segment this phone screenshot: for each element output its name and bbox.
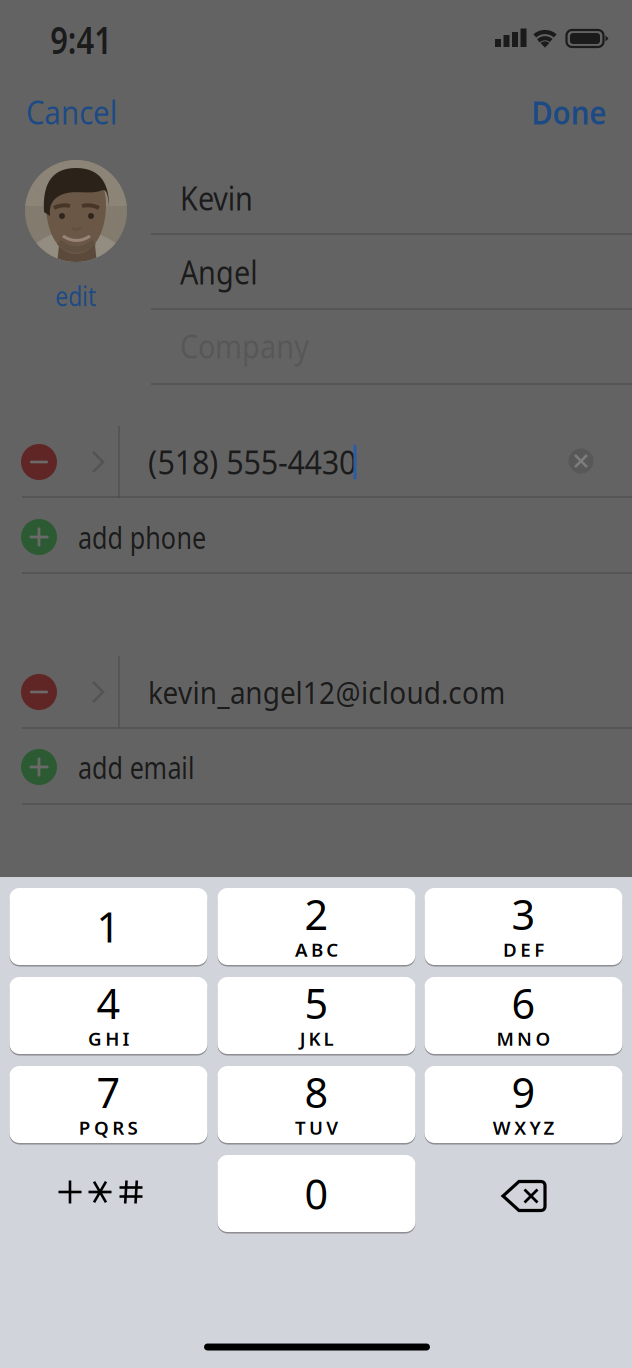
button[interactable]: Cancel bbox=[28, 83, 168, 141]
button[interactable]: 5 bbox=[217, 977, 415, 1054]
staticText: 5 bbox=[304, 976, 328, 1030]
button[interactable]: Clear text bbox=[564, 444, 598, 478]
button[interactable]: 1 bbox=[9, 888, 207, 965]
staticText: add email bbox=[22, 747, 164, 787]
staticText: kevin_angel12@icloud.com bbox=[120, 672, 513, 712]
staticText: 3 bbox=[511, 887, 535, 941]
staticText: edit bbox=[52, 278, 100, 314]
button[interactable]: Remove bbox=[17, 670, 61, 714]
staticText: 8 bbox=[304, 1065, 328, 1119]
staticText: M N O bbox=[498, 1027, 548, 1050]
staticText: 2 bbox=[304, 887, 328, 941]
button[interactable]: Symbols bbox=[9, 1155, 207, 1232]
staticText: Done bbox=[528, 91, 610, 133]
button[interactable]: 8 bbox=[217, 1066, 415, 1143]
button[interactable]: 3 bbox=[424, 888, 622, 965]
button[interactable]: 0 bbox=[217, 1155, 415, 1232]
staticText: W X Y Z bbox=[495, 1116, 552, 1139]
staticText: 1 bbox=[96, 899, 120, 954]
staticText: 9 bbox=[511, 1065, 535, 1119]
button[interactable]: 9 bbox=[424, 1066, 622, 1143]
button[interactable]: 7 bbox=[9, 1066, 207, 1143]
staticText: 6 bbox=[511, 976, 535, 1030]
staticText: add phone bbox=[22, 517, 178, 557]
button[interactable]: Contact photo bbox=[25, 160, 127, 262]
button[interactable]: 6 bbox=[424, 977, 622, 1054]
staticText: 7 bbox=[96, 1065, 120, 1119]
staticText: A B C bbox=[296, 938, 336, 961]
staticText: Kevin bbox=[149, 177, 230, 219]
staticText: Angel bbox=[149, 251, 235, 293]
staticText: 0 bbox=[304, 1166, 328, 1221]
staticText: P Q R S bbox=[81, 1116, 136, 1139]
staticText: (518) 555-4430 bbox=[134, 441, 352, 483]
staticText: 4 bbox=[96, 976, 120, 1030]
staticText: Company bbox=[149, 325, 292, 367]
staticText: G H I bbox=[89, 1027, 127, 1050]
button[interactable]: edit bbox=[31, 274, 121, 318]
button[interactable]: Remove bbox=[17, 440, 61, 484]
staticText: Cancel bbox=[22, 91, 121, 133]
button[interactable]: Done bbox=[474, 83, 604, 141]
button[interactable]: 2 bbox=[217, 888, 415, 965]
button[interactable]: Delete bbox=[424, 1155, 622, 1232]
staticText: D E F bbox=[504, 938, 542, 961]
staticText: T U V bbox=[296, 1116, 336, 1139]
staticText: 9:41 bbox=[42, 13, 119, 65]
staticText: J K L bbox=[301, 1027, 332, 1050]
button[interactable]: 4 bbox=[9, 977, 207, 1054]
